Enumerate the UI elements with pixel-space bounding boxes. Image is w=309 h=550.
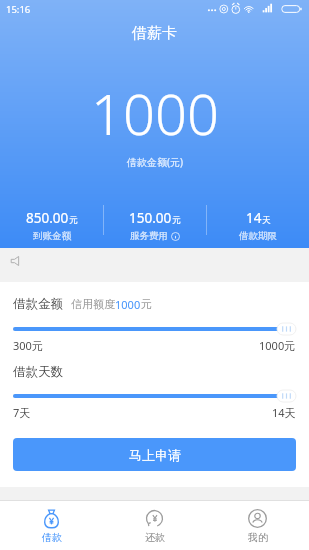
button[interactable]: 我的 — [206, 501, 309, 550]
staticText: 150.00 — [129, 209, 172, 227]
staticText: 1000元 — [259, 338, 296, 353]
button[interactable]: 马上申请 — [13, 438, 296, 471]
staticText: 借款金额(元) — [127, 155, 183, 169]
staticText: 850.00 — [26, 209, 69, 227]
staticText: 元 — [141, 297, 152, 311]
staticText: 还款 — [145, 531, 165, 544]
staticText: 借款天数 — [13, 364, 63, 380]
button[interactable]: 滑动选择 — [13, 390, 296, 402]
staticText: 信用额度 — [71, 297, 115, 311]
staticText: 到账金额 — [33, 230, 71, 242]
staticText: 14 — [246, 209, 262, 227]
staticText: 借薪卡 — [132, 24, 177, 43]
staticText: 1000 — [91, 75, 219, 151]
staticText: 元 — [172, 215, 181, 226]
staticText: 15:16 — [6, 3, 31, 16]
button[interactable]: 滑动选择 — [13, 323, 296, 335]
staticText: 借款期限 — [239, 230, 277, 242]
staticText: 1000 — [115, 297, 141, 312]
staticText: 服务费用 — [130, 230, 168, 242]
staticText: 14天 — [272, 405, 296, 420]
button[interactable]: 借款 — [0, 501, 103, 550]
other: 公告 — [10, 255, 22, 267]
button[interactable]: 还款 — [103, 501, 206, 550]
staticText: 7天 — [13, 405, 31, 420]
staticText: 元 — [69, 215, 78, 226]
button[interactable]: 公告 — [0, 248, 309, 274]
staticText: 借款金额 — [13, 296, 63, 312]
staticText: 300元 — [13, 338, 43, 353]
staticText: 借款 — [42, 531, 62, 544]
button[interactable]: 服务费用说明 — [171, 232, 180, 241]
staticText: 马上申请 — [129, 447, 181, 463]
staticText: 天 — [262, 215, 271, 226]
staticText: 我的 — [248, 531, 268, 544]
